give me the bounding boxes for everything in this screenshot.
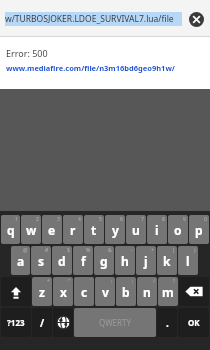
staticText: # [45,247,49,254]
staticText: t [91,222,97,238]
staticText: k [163,253,171,269]
staticText: l [186,253,190,269]
staticText: " [68,278,71,285]
staticText: u [132,222,140,238]
staticText: $ [67,247,70,254]
staticText: / [153,278,155,285]
button[interactable]: y [105,215,125,244]
button[interactable]: n [137,277,157,306]
staticText: 8 [162,216,165,223]
staticText: ?123 [7,317,25,328]
button[interactable]: w/TURBOSJOKER.LDOE_SURVIVAL7.lua/file [5,12,182,26]
button[interactable]: p [189,215,209,244]
staticText: - [131,247,133,254]
staticText: . [166,316,169,330]
button[interactable]: ?123 [1,308,31,337]
staticText: h [121,253,129,269]
button[interactable]: e [42,215,62,244]
staticText: c [81,284,88,300]
staticText: b [122,284,130,300]
staticText: v [102,284,109,300]
button[interactable]: s [31,246,51,275]
button[interactable]: a [11,246,30,275]
button[interactable]: Clear [186,9,206,29]
button[interactable]: d [52,246,72,275]
button[interactable]: m [158,277,178,306]
staticText: OK [188,317,200,328]
staticText: d [58,253,66,269]
staticText: / [40,316,45,330]
button[interactable]: r [63,215,83,244]
staticText: ( [173,247,175,254]
staticText: m [162,284,174,300]
staticText: 4 [78,216,81,223]
staticText: ) [194,247,196,254]
staticText: y [112,222,119,238]
button[interactable]: v [95,277,115,306]
staticText: f [81,253,86,269]
staticText: j [144,253,148,269]
button[interactable]: k [157,246,177,275]
staticText: q [7,222,15,238]
staticText: z [39,284,45,300]
button[interactable]: QWERTY [74,308,156,337]
button[interactable]: b [116,277,136,306]
staticText: & [108,247,112,254]
staticText: e [48,222,56,238]
staticText: 9 [183,216,186,223]
staticText: n [143,284,151,300]
staticText: www.mediafire.com/file/n3m16bd6geo9h1w/T… [6,63,210,73]
staticText: ; [132,278,134,285]
button[interactable]: OK [178,308,209,337]
staticText: 2 [36,216,39,223]
staticText: 7 [141,216,144,223]
button[interactable]: g [94,246,114,275]
staticText: 0 [204,216,207,223]
button[interactable]: j [136,246,156,275]
staticText: * [47,278,50,285]
button[interactable]: c [74,277,94,306]
button[interactable]: Backspace [179,277,209,306]
button[interactable]: o [168,215,188,244]
staticText: p [195,222,203,238]
button[interactable]: . [157,308,177,337]
staticText: % [86,247,91,254]
staticText: @ [23,247,28,254]
button[interactable]: / [32,308,52,337]
staticText: QWERTY [99,317,132,328]
staticText: Error: 500 [6,47,48,59]
staticText: s [38,253,45,269]
button[interactable]: i [147,215,167,244]
staticText: a [17,253,25,269]
button[interactable]: z [32,277,52,306]
staticText: : [111,278,113,285]
button[interactable]: f [73,246,93,275]
staticText: 1 [15,216,18,223]
button[interactable]: Shift [1,277,31,306]
staticText: x [60,284,67,300]
staticText: w [26,222,37,238]
button[interactable]: www.mediafire.com/file/n3m16bd6geo9h1w/T… [6,63,210,73]
staticText: ? [173,278,176,285]
staticText: o [174,222,182,238]
button[interactable]: q [1,215,20,244]
staticText: + [151,247,154,254]
staticText: ' [90,278,92,285]
button[interactable]: x [53,277,73,306]
staticText: 6 [120,216,123,223]
button[interactable]: l [178,246,198,275]
staticText: i [155,222,159,238]
staticText: r [70,222,76,238]
staticText: 5 [99,216,102,223]
button[interactable]: w [21,215,41,244]
staticText: g [100,253,108,269]
button[interactable]: u [126,215,146,244]
staticText: w/TURBOSJOKER.LDOE_SURVIVAL7.lua/file [5,13,174,25]
staticText: 3 [57,216,60,223]
button[interactable]: t [84,215,104,244]
button[interactable]: Change keyboard language [53,308,73,337]
button[interactable]: h [115,246,135,275]
